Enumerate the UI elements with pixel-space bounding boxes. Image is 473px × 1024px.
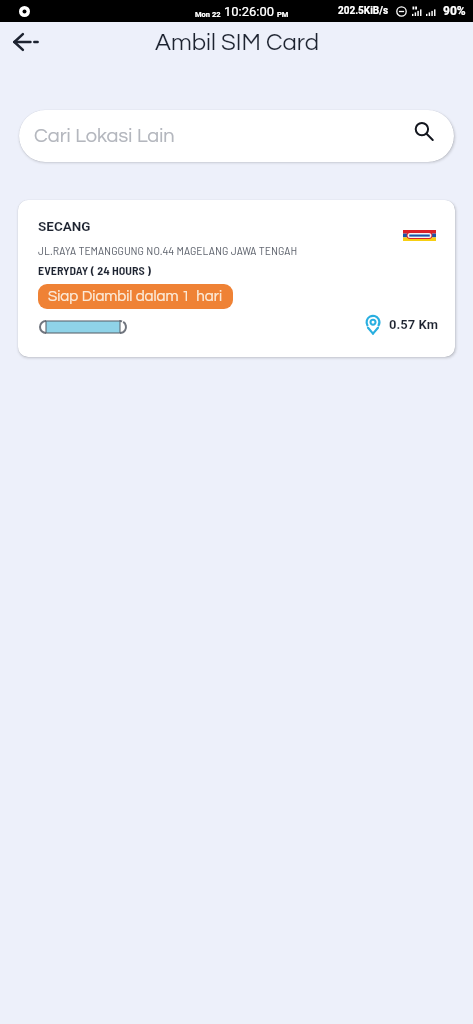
staticText: PM <box>277 10 289 19</box>
button[interactable]: Cari Lokasi Lain <box>19 110 454 162</box>
staticText: Cari Lokasi Lain <box>34 126 175 147</box>
button[interactable]: Siap Diambil dalam 1 hari <box>38 284 233 309</box>
other: Search <box>415 122 433 140</box>
staticText: 0.57 Km <box>389 317 438 332</box>
staticText: Ambil SIM Card <box>155 30 319 55</box>
button[interactable]: Back <box>2 22 50 62</box>
staticText: 10:26:00 <box>224 4 275 19</box>
other: Location <box>366 315 380 335</box>
staticText: JL.RAYA TEMANGGUNG NO.44 MAGELANG JAWA T… <box>38 243 298 257</box>
staticText: 202.5KiB/s <box>338 5 389 17</box>
staticText: 90% <box>443 4 466 18</box>
staticText: SECANG <box>38 218 91 234</box>
staticText: Mon 22 <box>195 10 221 19</box>
staticText: Siap Diambil dalam 1 hari <box>48 289 223 304</box>
button[interactable]: SECANG <box>18 200 455 357</box>
staticText: EVERYDAY ( 24 HOURS ) <box>38 263 152 277</box>
